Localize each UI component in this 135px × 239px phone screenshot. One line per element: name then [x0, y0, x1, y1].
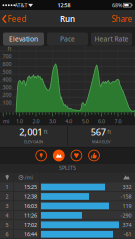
staticText: 2	[5, 193, 8, 200]
staticText: Share	[111, 14, 132, 24]
staticText: 374	[122, 221, 131, 228]
staticText: 100	[2, 99, 11, 106]
staticText: 3.0	[49, 118, 56, 125]
staticText: mi	[3, 118, 9, 125]
staticText: 15:25	[24, 183, 37, 191]
staticText: ft	[44, 128, 48, 135]
staticText: 600	[2, 60, 11, 68]
staticText: /mi	[24, 174, 32, 181]
staticText: 2.0	[32, 118, 39, 125]
button[interactable]: Elevation analysis	[53, 149, 65, 162]
staticText: 1	[5, 183, 8, 191]
staticText: 4	[5, 212, 8, 219]
staticText: ft	[7, 45, 11, 52]
staticText: 300	[2, 84, 11, 91]
staticText: Heart Rate	[94, 35, 128, 43]
staticText: 4.0	[65, 118, 72, 125]
button[interactable]: Feed	[0, 11, 26, 26]
staticText: 5.0	[82, 118, 89, 125]
button[interactable]: Pace	[47, 32, 88, 45]
button[interactable]: Map	[35, 149, 47, 162]
staticText: 400	[2, 76, 11, 83]
staticText: 6.0	[98, 118, 105, 125]
staticText: SPLITS	[59, 164, 76, 171]
staticText: -158	[120, 193, 131, 200]
staticText: MAX ELEV	[92, 139, 110, 144]
staticText: 5	[5, 221, 8, 228]
staticText: 7.0	[114, 118, 121, 125]
staticText: 16:44	[24, 231, 37, 238]
staticText: -290	[120, 212, 131, 219]
staticText: -61	[123, 231, 131, 238]
staticText: 16:03	[24, 202, 37, 209]
staticText: 1.0	[16, 118, 23, 125]
staticText: Run	[60, 14, 75, 24]
staticText: 3	[5, 202, 8, 209]
staticText: 119	[122, 202, 131, 209]
staticText: AT&T	[14, 2, 27, 9]
staticText: 17:02	[24, 221, 37, 228]
staticText: 700	[2, 53, 11, 60]
staticText: Feed	[7, 14, 26, 24]
staticText: 68%	[112, 2, 122, 9]
staticText: 200	[2, 91, 11, 98]
button[interactable]: Give kudos	[88, 149, 100, 162]
button[interactable]: Share	[102, 11, 132, 26]
button[interactable]: Heart rate	[70, 149, 83, 162]
staticText: ELEV GAIN	[24, 139, 43, 144]
staticText: Elevation	[9, 35, 38, 43]
staticText: 500	[2, 68, 11, 75]
staticText: 12:38	[24, 193, 37, 200]
staticText: 11:26	[24, 212, 37, 219]
staticText: 6	[5, 231, 8, 238]
staticText: 332	[122, 183, 131, 191]
staticText: 12:58	[57, 2, 70, 9]
button[interactable]: Elevation	[3, 32, 44, 45]
staticText: ft	[107, 128, 111, 135]
staticText: Pace	[60, 35, 75, 43]
button[interactable]: Heart Rate	[91, 32, 132, 45]
staticText: 2,001	[19, 126, 42, 138]
staticText: 567	[91, 126, 106, 138]
